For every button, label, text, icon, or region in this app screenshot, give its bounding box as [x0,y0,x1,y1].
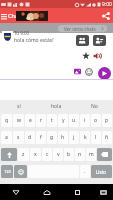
button[interactable]: c [42,148,52,161]
button[interactable]: d [25,131,35,144]
button[interactable]: Group chat [76,35,89,46]
staticText: hola [51,103,62,110]
staticText: a [5,134,8,141]
staticText: hola cómo estás! [14,37,54,44]
button[interactable]: Gallery [73,67,82,76]
button[interactable]: ñ [102,131,112,144]
staticText: o [94,117,98,124]
staticText: b [67,151,71,158]
button[interactable]: l [91,131,101,144]
staticText: Chat [8,12,21,19]
staticText: m [89,151,94,158]
staticText: i [84,117,86,124]
button[interactable]: Menu [0,12,8,20]
staticText: f [40,134,42,141]
staticText: g [50,134,54,141]
button[interactable]: Ver otros chats [58,25,107,32]
staticText: p [105,117,109,124]
button[interactable]: g [47,131,57,144]
button[interactable]: Back [30,187,113,197]
button[interactable]: h [58,131,68,144]
staticText: 9:00 [102,1,112,8]
button[interactable]: o [91,114,101,127]
staticText: r [40,117,43,124]
staticText: Tú 9:00 [14,30,30,36]
button[interactable]: Listo [91,165,112,178]
button[interactable]: shift [1,148,17,161]
staticText: k [84,134,87,141]
staticText: Listo [96,169,107,175]
button[interactable]: v [53,148,63,161]
button[interactable]: Home [31,184,62,200]
button[interactable]: Back [0,184,31,200]
button[interactable]: k [80,131,90,144]
button[interactable]: n [75,148,85,161]
button[interactable]: b [64,148,74,161]
staticText: . [84,168,86,175]
staticText: z [22,151,25,158]
staticText: j [73,134,75,141]
button[interactable]: r [36,114,46,127]
button[interactable]: hola [37,100,75,112]
button[interactable]: f [36,131,46,144]
staticText: d [28,134,32,141]
button[interactable]: sí [0,100,37,112]
button[interactable]: del [97,148,112,161]
staticText: ñ [105,134,109,141]
button[interactable]: No [75,100,113,112]
staticText: h [61,134,65,141]
button[interactable]: 123 [1,165,13,178]
button[interactable]: emoji [14,165,27,178]
button[interactable]: Emoji [84,67,93,76]
staticText: t [51,117,53,124]
staticText: e [29,117,32,124]
staticText: w [17,117,21,124]
button[interactable]: Send [98,67,111,80]
button[interactable]: Screenshot [93,184,113,200]
button[interactable]: q [1,114,12,127]
button[interactable]: e [25,114,35,127]
button[interactable]: j [69,131,79,144]
button[interactable]: Sound [92,51,102,61]
button[interactable]: Share [100,10,111,21]
button[interactable]: i [80,114,90,127]
button[interactable]: t [47,114,57,127]
button[interactable]: Contact [93,35,106,46]
button[interactable]: x [30,148,41,161]
staticText: y [62,117,65,124]
staticText: v [57,151,60,158]
staticText: l [95,134,97,141]
staticText: c [46,151,49,158]
button[interactable]: s [13,131,24,144]
button[interactable]: z [18,148,29,161]
button[interactable]: w [13,114,24,127]
button[interactable]: Favorite [81,51,91,61]
staticText: sí [17,103,21,110]
staticText: No [91,103,98,110]
staticText: 123 [4,169,11,174]
staticText: s [17,134,20,141]
button[interactable]: u [69,114,79,127]
staticText: n [78,151,82,158]
staticText: u [72,117,76,124]
button[interactable]: y [58,114,68,127]
staticText: x [34,151,37,158]
button[interactable]: p [102,114,112,127]
button[interactable]: . [80,165,90,178]
staticText: Ver otros chats [64,26,96,32]
button[interactable]: a [1,131,12,144]
button[interactable]: m [86,148,96,161]
button[interactable]: Recents [62,184,93,200]
staticText: q [5,117,9,124]
